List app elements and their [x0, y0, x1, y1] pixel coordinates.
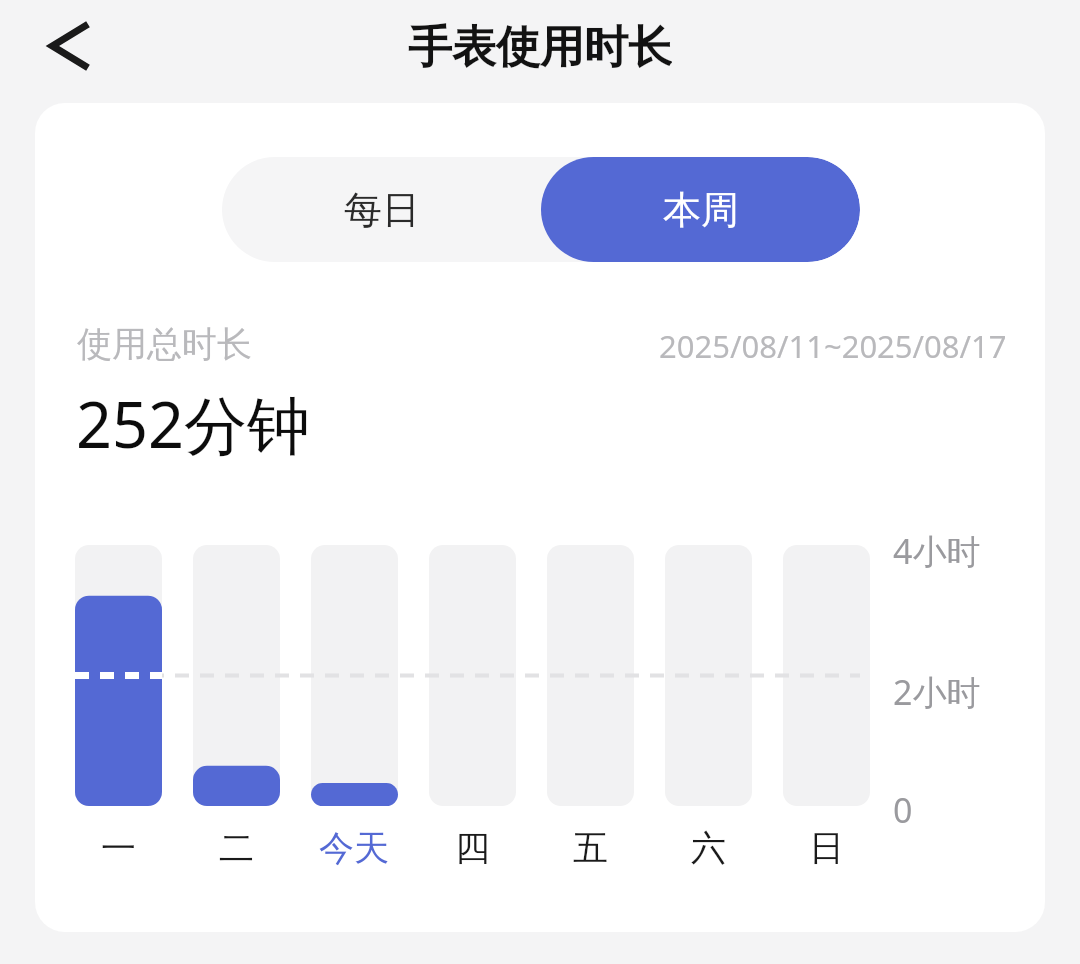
- staticText: 一: [101, 826, 136, 870]
- staticText: 本周: [663, 186, 739, 234]
- button[interactable]: 四: [413, 823, 531, 873]
- staticText: 2小时: [893, 669, 981, 715]
- staticText: 四: [455, 826, 490, 870]
- staticText: 使用总时长: [77, 322, 252, 366]
- button[interactable]: 日: [767, 823, 885, 873]
- button[interactable]: 六: [649, 823, 767, 873]
- staticText: 今天: [319, 826, 389, 870]
- staticText: 日: [809, 826, 844, 870]
- button[interactable]: Back: [28, 12, 96, 80]
- staticText: 252分钟: [76, 381, 311, 467]
- staticText: 手表使用时长: [408, 20, 672, 72]
- button[interactable]: 每日: [222, 157, 541, 262]
- staticText: 0: [893, 787, 913, 833]
- staticText: 二: [219, 826, 254, 870]
- staticText: 每日: [344, 186, 420, 234]
- staticText: 六: [691, 826, 726, 870]
- staticText: 2025/08/11~2025/08/17: [659, 325, 1007, 367]
- button[interactable]: 二: [177, 823, 295, 873]
- staticText: 4小时: [893, 528, 981, 574]
- staticText: 五: [573, 826, 608, 870]
- button[interactable]: 今天: [295, 823, 413, 873]
- button[interactable]: 一: [59, 823, 177, 873]
- button[interactable]: 五: [531, 823, 649, 873]
- button[interactable]: 本周: [541, 157, 860, 262]
